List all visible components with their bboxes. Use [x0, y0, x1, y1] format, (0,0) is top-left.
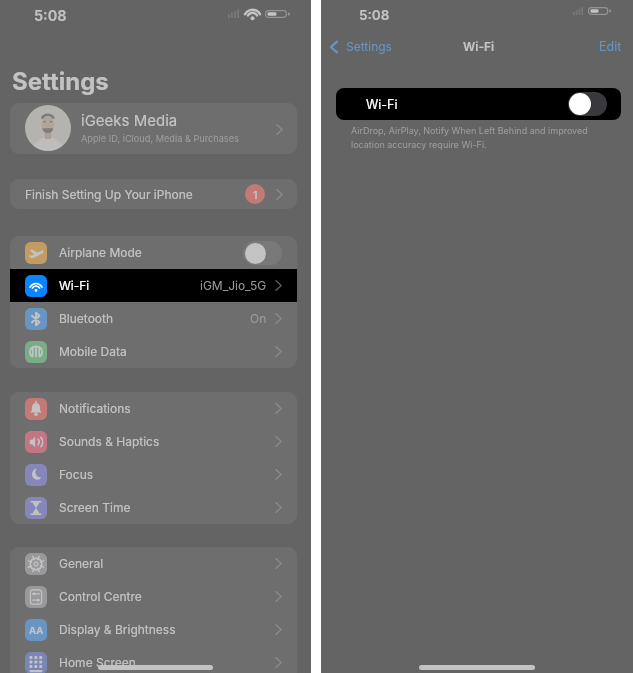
button[interactable]: Bluetooth [10, 302, 297, 335]
staticText: iGeeks Media [81, 111, 178, 129]
staticText: location accuracy require Wi-Fi. [351, 139, 487, 150]
staticText: Sounds & Haptics [59, 434, 160, 449]
staticText: Mobile Data [59, 344, 127, 359]
staticText: Settings [12, 67, 109, 96]
button[interactable]: Back [321, 39, 392, 54]
button[interactable]: Airplane Mode [10, 236, 297, 269]
staticText: Airplane Mode [59, 245, 142, 260]
staticText: 5:08 [359, 7, 390, 23]
button[interactable]: Home Screen [10, 646, 297, 673]
staticText: Finish Setting Up Your iPhone [25, 187, 193, 202]
button[interactable]: Mobile Data [10, 335, 297, 368]
staticText: Wi-Fi [366, 97, 398, 112]
button[interactable]: Finish Setting Up Your iPhone [10, 179, 297, 209]
staticText: Bluetooth [59, 311, 114, 326]
staticText: 5:08 [34, 7, 67, 25]
staticText: On [250, 311, 267, 326]
staticText: Display & Brightness [59, 622, 176, 637]
button[interactable]: Sounds & Haptics [10, 425, 297, 458]
staticText: Home Screen [59, 655, 136, 670]
staticText: General [59, 556, 104, 571]
staticText: 1 [253, 188, 258, 201]
staticText: Control Centre [59, 589, 142, 604]
staticText: AA [29, 625, 44, 636]
button[interactable]: Edit [599, 39, 633, 54]
staticText: iGM_Jio_5G [200, 278, 267, 293]
other: Back [330, 41, 338, 53]
button[interactable]: AA [10, 613, 297, 646]
button[interactable]: Toggle Airplane Mode [243, 241, 282, 265]
button[interactable]: Wi-Fi [336, 88, 621, 120]
staticText: Focus [59, 467, 94, 482]
staticText: Wi-Fi [59, 278, 90, 293]
button[interactable]: Wi-Fi switch [568, 92, 607, 116]
button[interactable]: Notifications [10, 392, 297, 425]
staticText: Wi-Fi [463, 39, 495, 54]
staticText: Settings [346, 39, 392, 54]
staticText: Apple ID, iCloud, Media & Purchases [81, 133, 239, 144]
staticText: Notifications [59, 401, 131, 416]
staticText: Screen Time [59, 500, 131, 515]
button[interactable]: General [10, 547, 297, 580]
button[interactable]: Screen Time [10, 491, 297, 524]
staticText: AirDrop, AirPlay, Notify When Left Behin… [351, 125, 588, 136]
button[interactable]: Control Centre [10, 580, 297, 613]
button[interactable]: iGeeks Media [10, 103, 297, 154]
button[interactable]: Wi-Fi [10, 269, 297, 302]
button[interactable]: Focus [10, 458, 297, 491]
